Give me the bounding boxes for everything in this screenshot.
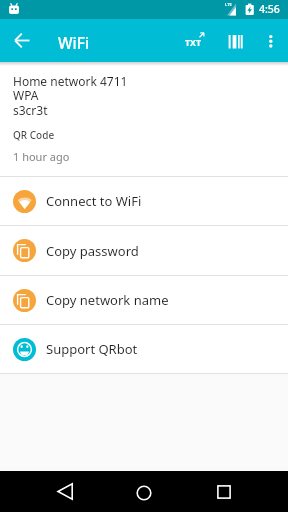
staticText: Copy password <box>46 242 139 260</box>
staticText: 4:56 <box>259 2 280 16</box>
staticText: 1 hour ago <box>13 149 70 164</box>
staticText: LTE <box>225 2 232 7</box>
staticText: Connect to WiFi <box>46 192 142 210</box>
button[interactable]: TXT <box>181 28 209 54</box>
button[interactable] <box>209 477 238 506</box>
button[interactable] <box>258 28 284 54</box>
staticText: QR Code <box>13 128 55 142</box>
staticText: Copy network name <box>46 291 169 309</box>
button[interactable] <box>222 28 250 54</box>
staticText: WiFi <box>58 32 90 53</box>
button[interactable] <box>51 477 80 506</box>
button[interactable]: Copy password <box>0 226 288 275</box>
button[interactable] <box>129 478 158 507</box>
button[interactable] <box>8 26 37 55</box>
staticText: TXT <box>185 37 202 49</box>
button[interactable]: Support QRbot <box>0 325 288 373</box>
button[interactable]: Copy network name <box>0 276 288 324</box>
staticText: Support QRbot <box>46 340 138 358</box>
button[interactable]: Connect to WiFi <box>0 177 288 225</box>
staticText: Home network 4711 WPA s3cr3t <box>13 73 128 119</box>
